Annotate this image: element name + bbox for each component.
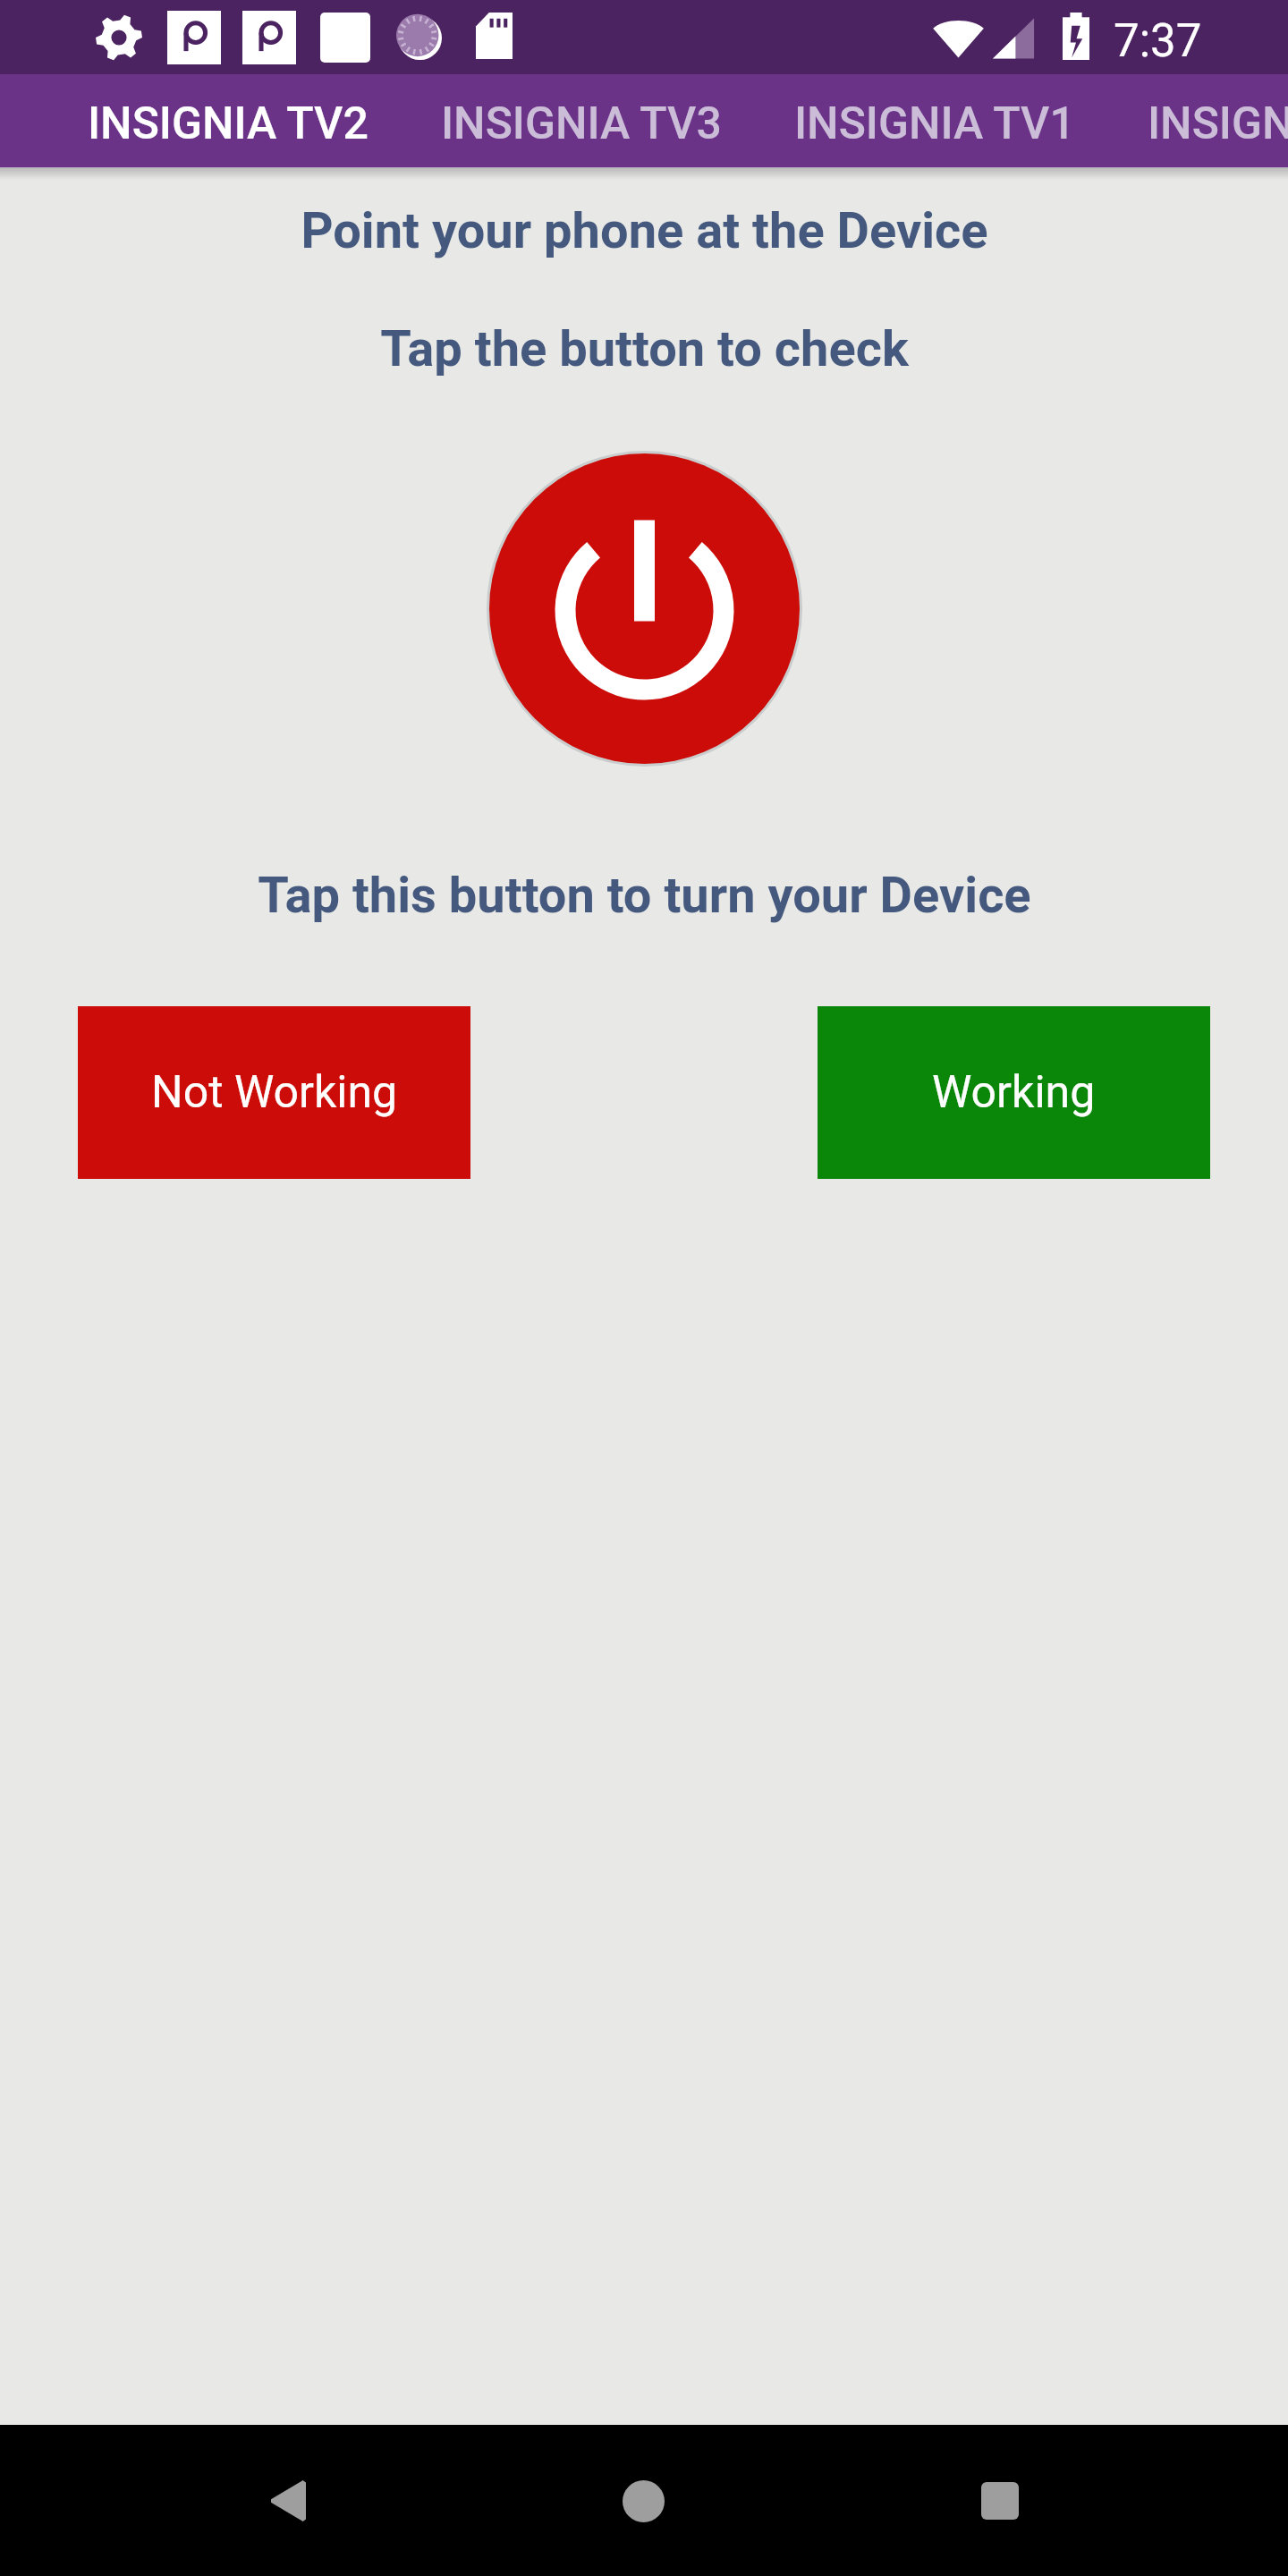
button[interactable]: Not Working [78,1006,470,1179]
staticText: INSIGNIA TV1 [794,97,1075,150]
button[interactable]: INSIGNIA TV1 [708,74,1061,167]
staticText: INSIGNIA TV2 [88,97,369,150]
staticText: Not Working [151,1066,398,1119]
staticText: 7:37 [1114,14,1202,68]
staticText: Point your phone at the Device [301,201,988,260]
staticText: Tap this button to turn your Device [258,866,1031,925]
button[interactable]: Back [233,2447,341,2555]
button[interactable]: INSIGNIA TV3 [354,74,708,167]
staticText: INSIGNIA TV3 [441,97,722,150]
staticText: Tap the button to check [380,319,909,378]
button[interactable]: INSIGNIA TV2 [1,74,354,167]
button[interactable]: Home [589,2447,697,2555]
staticText: INSIGNIA TV4 [1148,97,1288,150]
button[interactable]: Power [487,452,801,766]
button[interactable]: Recents [946,2447,1054,2555]
staticText: Working [932,1066,1096,1119]
button[interactable]: Working [818,1006,1210,1179]
button[interactable]: INSIGNIA TV4 [1061,74,1288,167]
